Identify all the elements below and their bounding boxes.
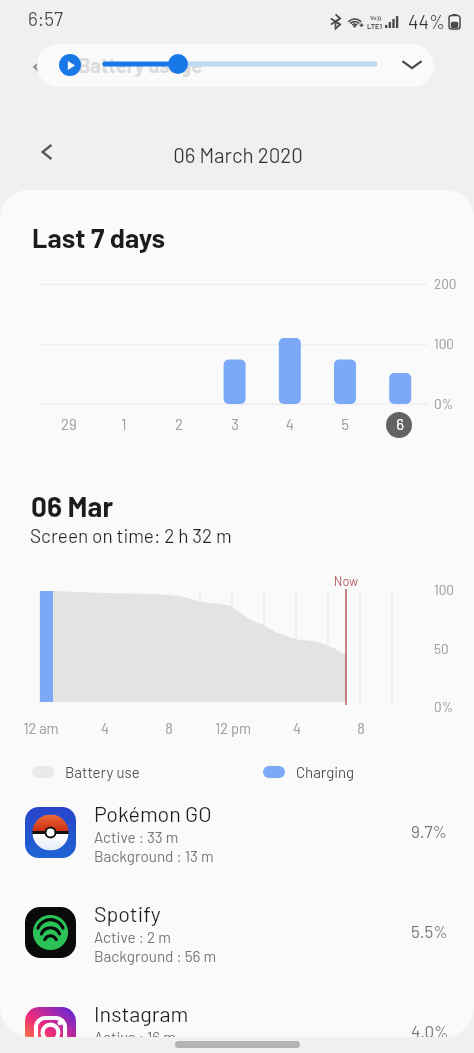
staticText: 0% [434,698,454,714]
staticText: Background : 56 m [94,947,217,965]
staticText: 6:57 [28,7,63,30]
button[interactable]: Seek bar [100,54,385,74]
staticText: Vo)) [370,14,381,21]
button[interactable]: Play [59,54,81,76]
staticText: Charging [296,763,355,781]
staticText: Active : 16 m [94,1028,176,1037]
button[interactable]: Previous day [33,138,61,166]
staticText: Active : 2 m [94,928,171,946]
staticText: Now [196,573,474,588]
staticText: 100 [434,581,454,597]
staticText: 4 [147,719,447,736]
staticText: LTE1 [367,21,383,30]
staticText: 29 [0,415,219,433]
staticText: Battery usage [78,53,203,77]
button[interactable]: Instagram [0,982,474,1037]
staticText: 12 am [0,719,191,736]
button[interactable]: Spotify [0,882,474,982]
staticText: 8 [19,719,319,736]
staticText: Spotify [94,900,161,926]
staticText: 06 March 2020 [88,142,388,167]
staticText: 5 [195,415,474,433]
staticText: Screen on time: 2 h 32 m [30,524,232,547]
staticText: 5.5% [411,921,448,941]
button[interactable]: Charging [263,760,355,784]
staticText: 4.0% [411,1021,449,1037]
staticText: 50 [434,640,449,656]
staticText: Active : 33 m [94,828,179,846]
staticText: 100 [434,335,454,351]
staticText: Background : 13 m [94,847,214,865]
staticText: 9.7% [411,821,448,841]
staticText: 2 [29,415,329,433]
staticText: 0% [434,395,454,411]
staticText: 4 [140,415,440,433]
staticText: 6 [250,415,474,433]
staticText: 8 [211,719,474,736]
staticText: Last 7 days [32,221,166,253]
staticText: 12 pm [83,719,383,736]
button[interactable]: Back [22,51,54,83]
staticText: 3 [85,415,385,433]
staticText: 44% [408,10,446,33]
staticText: Pokémon GO [94,800,212,826]
staticText: Instagram [94,1000,189,1026]
staticText: 200 [434,275,457,291]
staticText: 4 [0,719,255,736]
button[interactable]: Collapse [400,52,424,76]
button[interactable]: Pokémon GO [0,782,474,882]
button[interactable]: Battery use [32,760,140,784]
staticText: Battery use [65,763,140,781]
staticText: 06 Mar [31,489,114,523]
staticText: 1 [0,415,274,433]
